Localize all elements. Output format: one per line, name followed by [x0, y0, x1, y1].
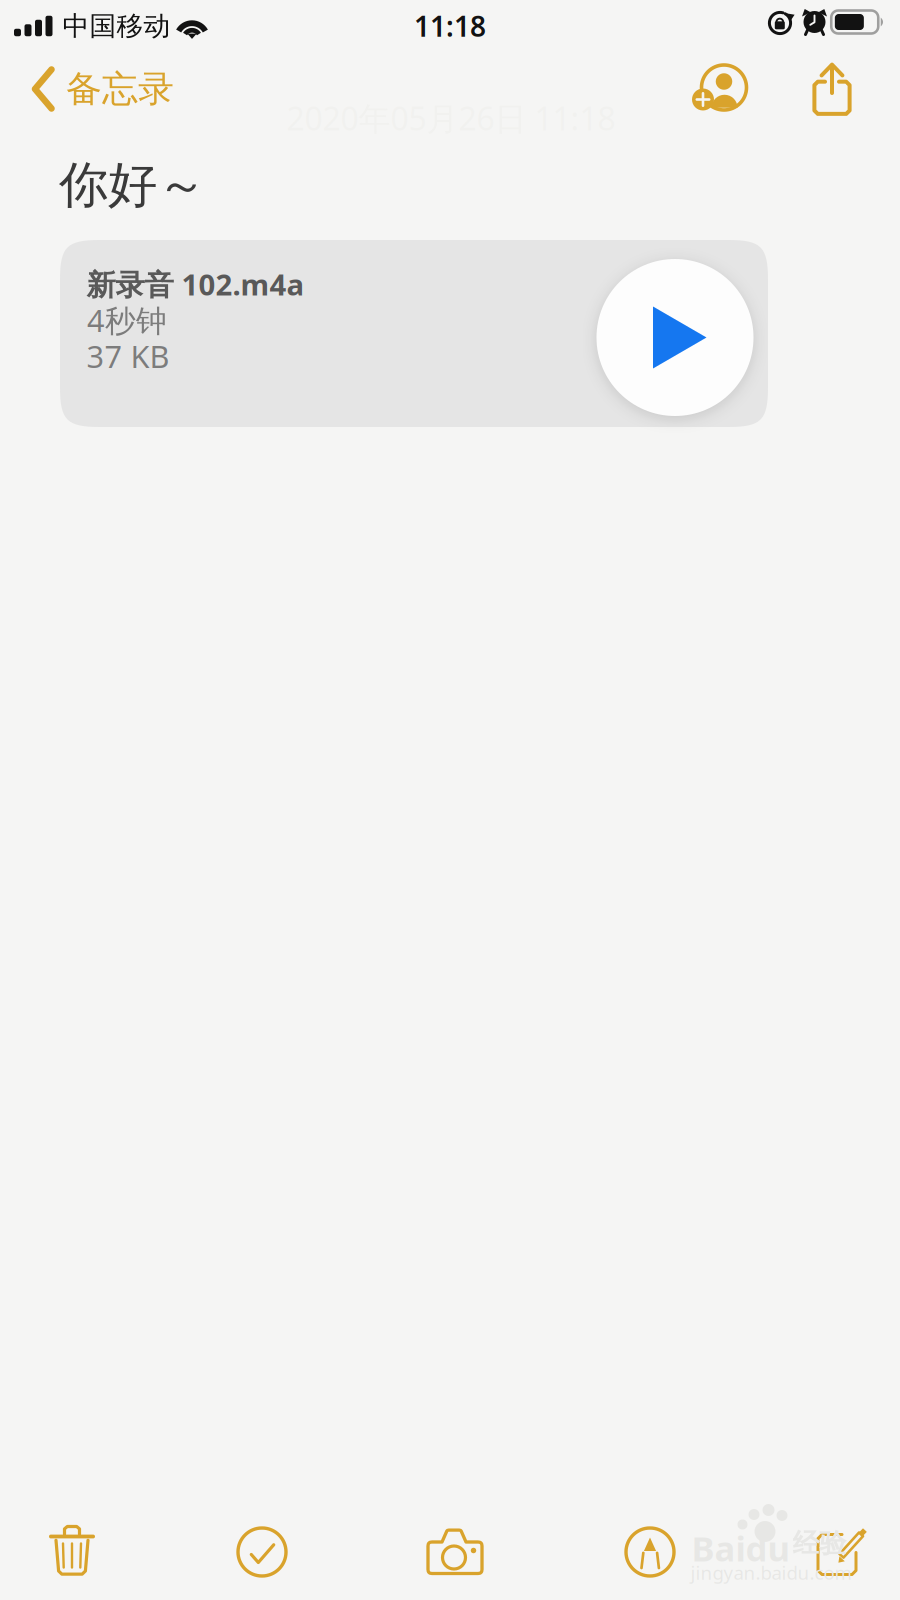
button[interactable]: 备忘录	[0, 52, 190, 126]
staticText: Baidu	[691, 1525, 790, 1571]
staticText: 中国移动	[62, 10, 170, 42]
button[interactable]: 添加人员	[670, 52, 764, 126]
button[interactable]: 清单	[187, 1504, 337, 1600]
staticText: 你好～	[59, 155, 206, 215]
button[interactable]: 播放	[595, 257, 755, 417]
staticText: 备忘录	[66, 67, 174, 111]
staticText: 新录音 102.m4a	[86, 264, 304, 303]
button[interactable]: 新录音 102.m4a	[60, 240, 768, 427]
staticText: 经验	[792, 1527, 846, 1560]
staticText: 37 KB	[86, 336, 169, 376]
staticText: 11:18	[414, 7, 486, 45]
button[interactable]: 相机	[380, 1504, 530, 1600]
button[interactable]: 删除	[0, 1504, 147, 1600]
button[interactable]: 新建备忘录	[764, 1504, 900, 1600]
staticText: 4秒钟	[87, 300, 167, 340]
button[interactable]: 共享	[790, 52, 874, 126]
staticText: jingyan.baidu.com	[690, 1560, 851, 1585]
button[interactable]: 标记	[575, 1504, 725, 1600]
